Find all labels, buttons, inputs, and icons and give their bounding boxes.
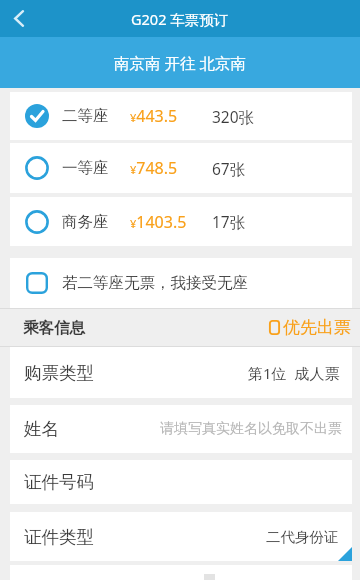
- button[interactable]: 若二等座无票，我接受无座: [10, 258, 352, 308]
- staticText: ¥1403.5: [130, 211, 187, 233]
- button[interactable]: 二等座: [10, 92, 352, 140]
- button[interactable]: 商务座: [10, 197, 352, 246]
- button[interactable]: 姓名: [10, 405, 352, 453]
- staticText: 南京南 开往 北京南: [114, 52, 247, 73]
- staticText: 证件类型: [24, 526, 94, 548]
- staticText: 请填写真实姓名以免取不出票: [160, 420, 342, 438]
- staticText: 若二等座无票，我接受无座: [62, 273, 248, 293]
- staticText: 乘客信息: [23, 318, 85, 338]
- staticText: 姓名: [24, 418, 59, 440]
- staticText: 一等座: [62, 158, 109, 178]
- staticText: 优先出票: [283, 317, 351, 338]
- staticText: 商务座: [62, 212, 109, 232]
- staticText: 67张: [212, 158, 246, 179]
- staticText: G202 车票预订: [131, 9, 229, 29]
- staticText: ¥443.5: [130, 105, 178, 127]
- button[interactable]: 证件类型: [10, 512, 352, 561]
- staticText: ¥748.5: [130, 157, 178, 179]
- staticText: 证件号码: [24, 471, 94, 493]
- staticText: 320张: [212, 106, 255, 127]
- staticText: 二代身份证: [266, 528, 339, 546]
- staticText: 购票类型: [24, 362, 94, 384]
- button[interactable]: [14, 10, 24, 27]
- button[interactable]: 购票类型: [10, 347, 352, 398]
- staticText: 二等座: [62, 106, 109, 126]
- staticText: 17张: [212, 211, 246, 232]
- button[interactable]: 优先出票: [269, 317, 351, 338]
- button[interactable]: 一等座: [10, 143, 352, 193]
- staticText: 第1位 成人票: [248, 363, 340, 383]
- button[interactable]: 证件号码: [10, 460, 352, 504]
